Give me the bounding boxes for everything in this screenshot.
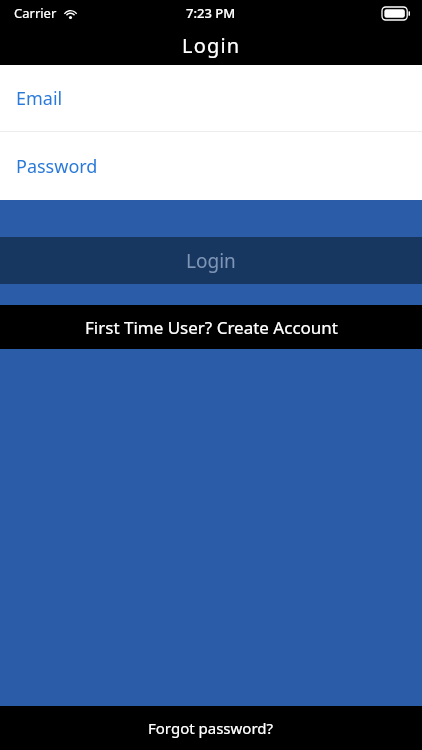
- staticText: 7:23 PM: [186, 4, 236, 22]
- staticText: Login: [182, 32, 241, 59]
- staticText: Carrier: [14, 4, 57, 22]
- button[interactable]: Email: [0, 65, 422, 131]
- other: Wi-Fi signal: [63, 8, 78, 19]
- staticText: Password: [16, 154, 98, 179]
- button[interactable]: Forgot password?: [0, 706, 422, 750]
- button[interactable]: Password: [0, 132, 422, 200]
- staticText: First Time User? Create Account: [85, 316, 338, 339]
- staticText: Forgot password?: [148, 718, 274, 738]
- button[interactable]: Login: [0, 237, 422, 284]
- staticText: Login: [186, 248, 236, 274]
- staticText: Email: [16, 86, 63, 111]
- button[interactable]: First Time User? Create Account: [0, 305, 422, 349]
- other: Battery full: [382, 7, 410, 20]
